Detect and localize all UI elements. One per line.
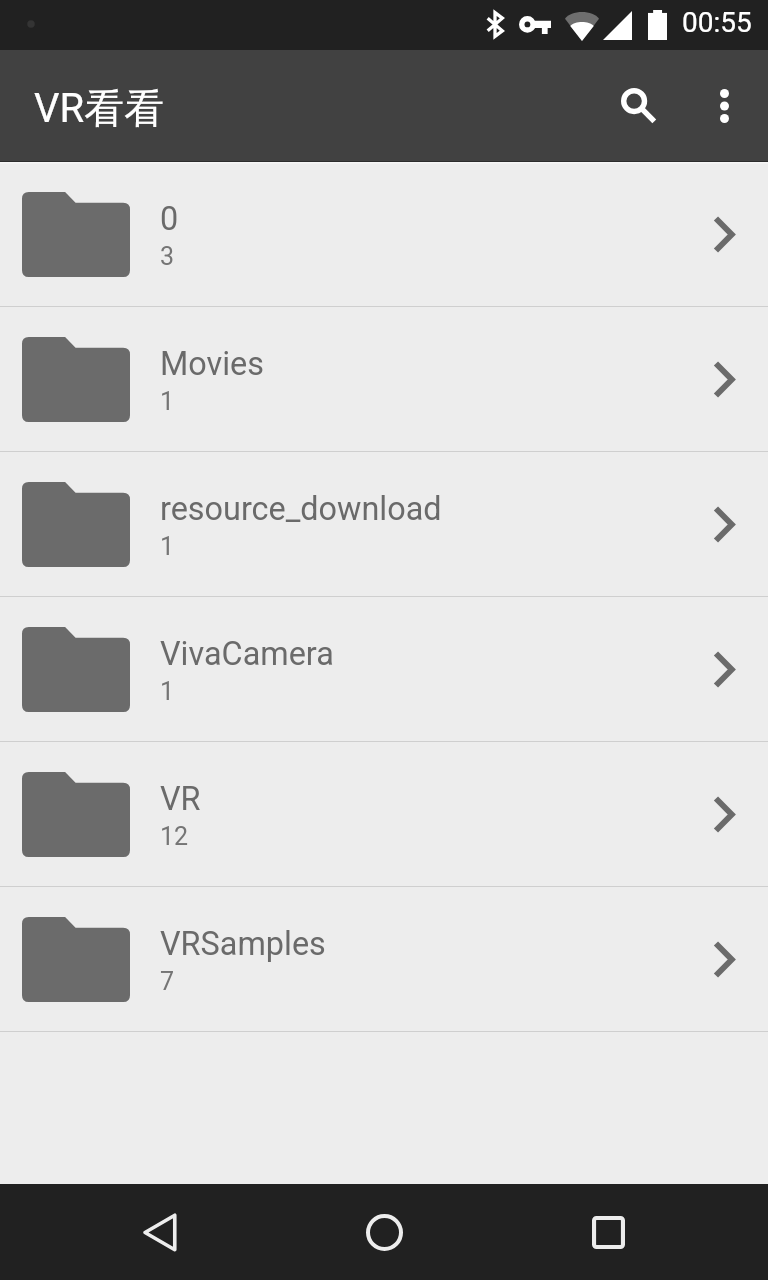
staticText: VivaCamera bbox=[160, 635, 334, 673]
button[interactable]: Home bbox=[336, 1184, 432, 1280]
staticText: Movies bbox=[160, 345, 264, 383]
staticText: 12 bbox=[160, 822, 189, 851]
button[interactable]: VivaCamera bbox=[0, 597, 768, 742]
staticText: 1 bbox=[160, 677, 175, 706]
staticText: resource_download bbox=[160, 490, 442, 528]
button[interactable]: VR bbox=[0, 742, 768, 887]
staticText: 7 bbox=[160, 967, 175, 996]
staticText: VRSamples bbox=[160, 925, 326, 963]
button[interactable]: Movies bbox=[0, 307, 768, 452]
staticText: 1 bbox=[160, 387, 175, 416]
staticText: VR bbox=[160, 780, 201, 818]
staticText: 0 bbox=[160, 200, 179, 238]
button[interactable]: Back bbox=[112, 1184, 208, 1280]
button[interactable]: VRSamples bbox=[0, 887, 768, 1032]
button[interactable]: Search bbox=[611, 50, 667, 162]
button[interactable]: 0 bbox=[0, 162, 768, 307]
button[interactable]: Recents bbox=[560, 1184, 656, 1280]
button[interactable]: More options bbox=[698, 50, 750, 162]
button[interactable]: resource_download bbox=[0, 452, 768, 597]
staticText: 1 bbox=[160, 532, 175, 561]
staticText: 3 bbox=[160, 242, 175, 271]
staticText: VR看看 bbox=[34, 83, 165, 133]
staticText: 00:55 bbox=[682, 6, 752, 39]
